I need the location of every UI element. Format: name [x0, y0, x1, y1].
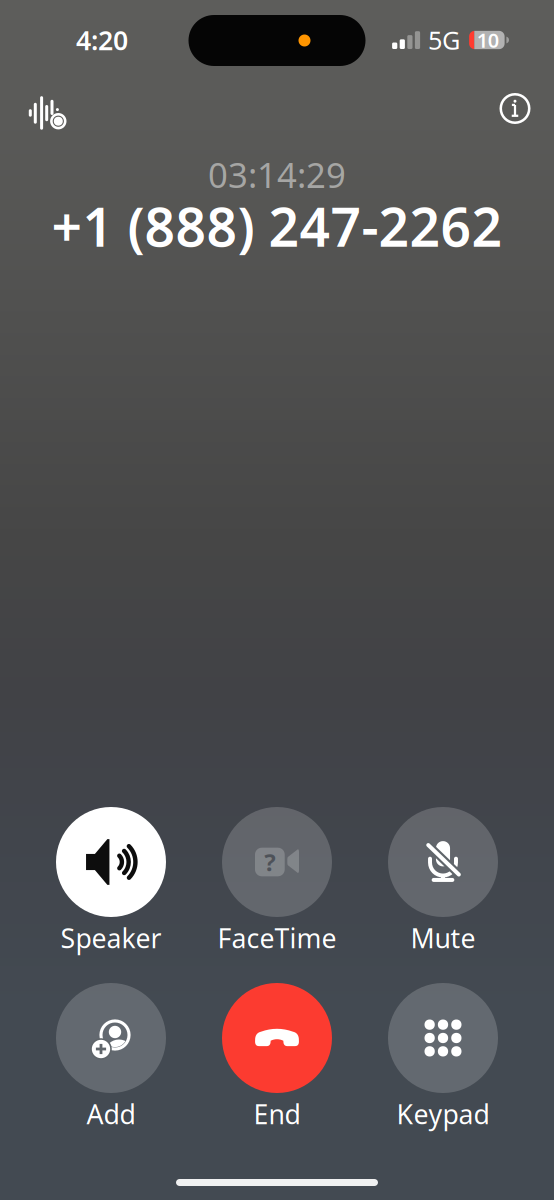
staticText: Mute [410, 920, 475, 956]
staticText: End [253, 1096, 300, 1132]
staticText: FaceTime [217, 920, 336, 956]
staticText: Keypad [396, 1096, 489, 1132]
staticText: ? [264, 846, 275, 878]
staticText: +1 (888) 247-2262 [51, 191, 502, 261]
staticText: 4:20 [76, 22, 128, 58]
staticText: Add [86, 1096, 135, 1132]
staticText: 10 [477, 27, 499, 53]
staticText: 03:14:29 [208, 151, 346, 197]
button[interactable]: Add [28, 983, 194, 1127]
staticText: Speaker [60, 920, 161, 956]
button[interactable]: Call Recording [20, 73, 76, 139]
button[interactable]: Speaker [28, 807, 194, 951]
staticText: 5G [428, 23, 460, 57]
button[interactable]: Mute [360, 807, 526, 951]
button[interactable]: Call Details [487, 77, 543, 134]
button[interactable]: Keypad [360, 983, 526, 1127]
button[interactable]: ? [194, 807, 360, 951]
button[interactable]: End [194, 983, 360, 1127]
